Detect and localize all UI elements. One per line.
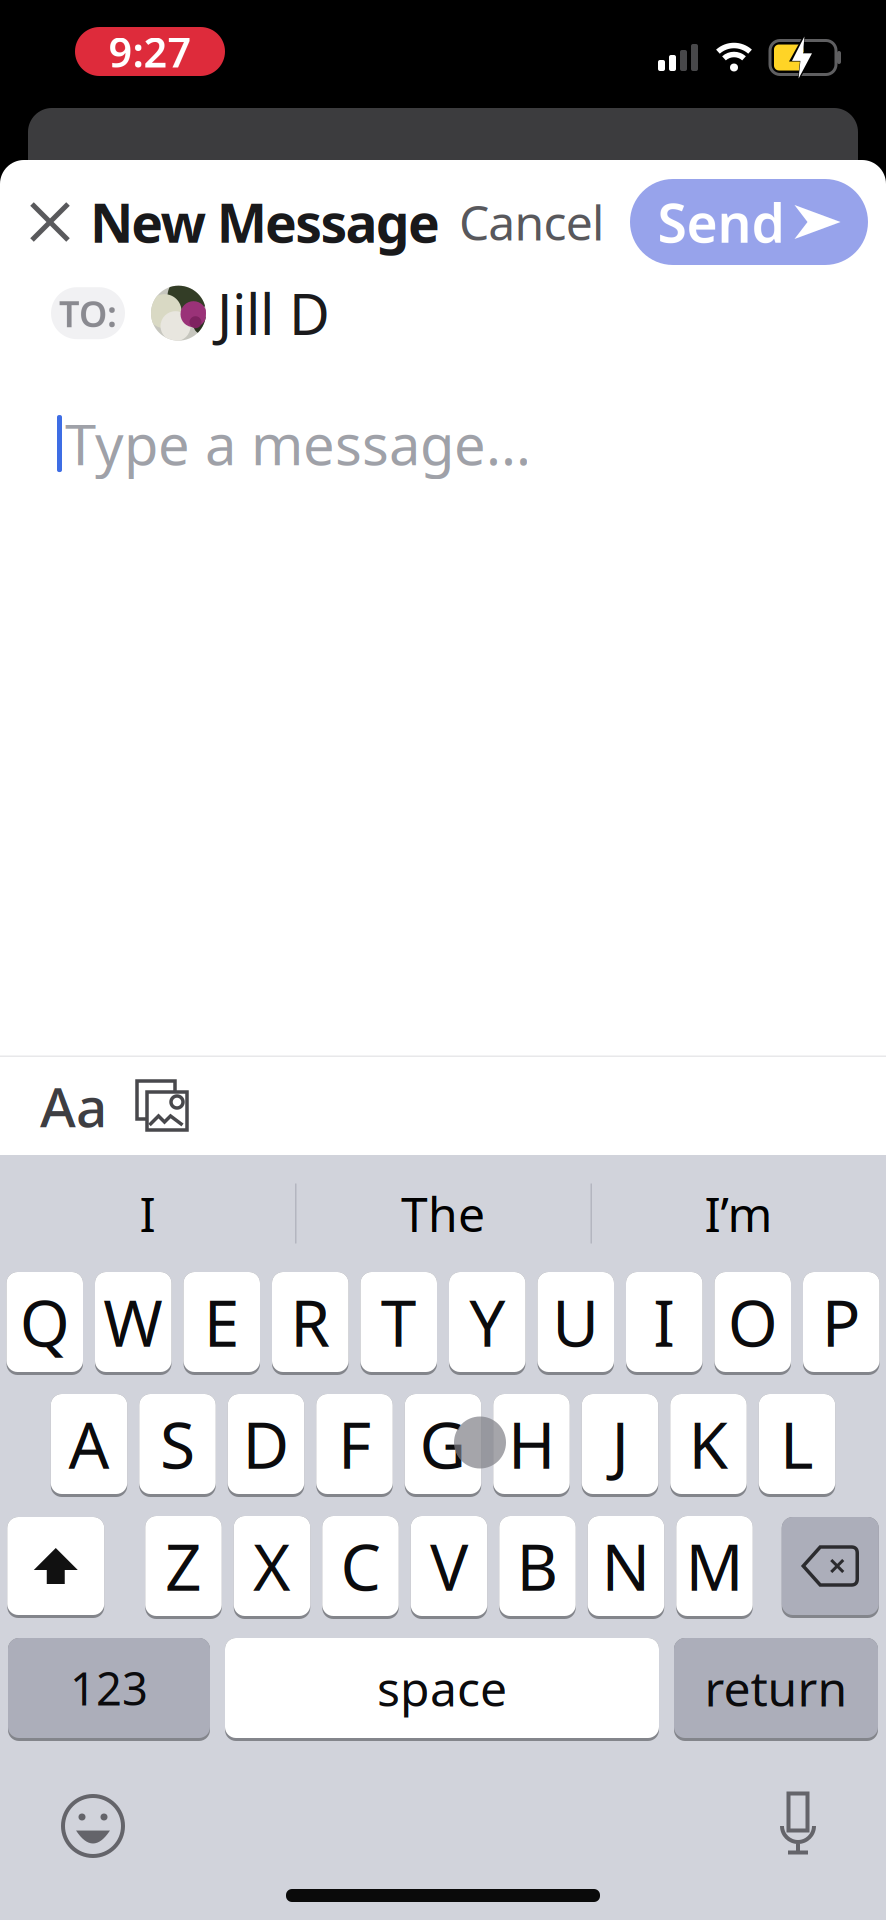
button[interactable]: Dictation [776, 1795, 886, 1857]
staticText: Q [20, 1279, 70, 1364]
staticText: X [253, 1523, 291, 1608]
staticText: V [430, 1523, 468, 1608]
staticText: TO: [59, 289, 117, 337]
button[interactable]: Shift [7, 1517, 104, 1618]
staticText: W [103, 1279, 163, 1364]
button[interactable]: Delete [782, 1517, 879, 1618]
button[interactable]: The [295, 1155, 591, 1272]
button[interactable]: K [670, 1394, 747, 1497]
button[interactable]: D [228, 1394, 304, 1497]
button[interactable]: Cancel [459, 190, 604, 254]
staticText: Type a message... [65, 406, 531, 481]
button[interactable]: I’m [591, 1155, 886, 1272]
staticText: 123 [70, 1658, 148, 1718]
staticText: U [552, 1279, 599, 1364]
button[interactable]: Q [6, 1272, 83, 1375]
button[interactable]: R [272, 1272, 348, 1375]
staticText: E [204, 1279, 240, 1364]
button[interactable]: W [95, 1272, 171, 1375]
staticText: F [338, 1401, 371, 1486]
staticText: New Message [90, 187, 440, 257]
button[interactable]: U [537, 1272, 614, 1375]
button[interactable]: I [626, 1272, 702, 1375]
staticText: L [780, 1401, 814, 1486]
staticText: 9:27 [108, 24, 191, 79]
staticText: A [68, 1401, 109, 1486]
button[interactable]: S [139, 1394, 216, 1497]
staticText: R [290, 1279, 330, 1364]
staticText: I’m [704, 1182, 772, 1245]
button[interactable]: X [234, 1516, 310, 1619]
staticText: space [377, 1656, 507, 1720]
staticText: Aa [40, 1070, 107, 1142]
staticText: N [601, 1523, 650, 1608]
button[interactable]: H [493, 1394, 570, 1497]
button[interactable]: J [582, 1394, 658, 1497]
staticText: I [653, 1279, 675, 1364]
button[interactable]: 123 [8, 1638, 210, 1741]
staticText: H [508, 1401, 555, 1486]
button[interactable]: P [803, 1272, 879, 1375]
staticText: M [685, 1523, 743, 1608]
button[interactable]: Send [630, 179, 868, 265]
staticText: Jill D [217, 276, 330, 350]
button[interactable]: M [676, 1516, 753, 1619]
button[interactable]: A [51, 1394, 127, 1497]
staticText: Z [165, 1523, 202, 1608]
button[interactable]: O [714, 1272, 791, 1375]
button[interactable]: Emoji [0, 1797, 122, 1855]
button[interactable]: V [411, 1516, 487, 1619]
staticText: D [242, 1401, 289, 1486]
staticText: P [822, 1279, 861, 1364]
button[interactable]: Photos [107, 1078, 191, 1134]
button[interactable]: L [759, 1394, 835, 1497]
staticText: S [160, 1401, 195, 1486]
button[interactable]: space [225, 1638, 659, 1741]
button[interactable]: C [322, 1516, 399, 1619]
staticText: C [340, 1523, 380, 1608]
staticText: return [704, 1656, 847, 1720]
button[interactable]: T [360, 1272, 437, 1375]
button[interactable]: N [588, 1516, 664, 1619]
staticText: B [516, 1523, 558, 1608]
button[interactable]: Text formatting [0, 1070, 107, 1142]
button[interactable]: E [183, 1272, 260, 1375]
staticText: Send [657, 187, 784, 257]
button[interactable]: I [0, 1155, 295, 1272]
staticText: T [381, 1279, 417, 1364]
button[interactable]: return [674, 1638, 878, 1741]
staticText: Y [469, 1279, 505, 1364]
staticText: The [401, 1182, 485, 1245]
button[interactable]: B [499, 1516, 576, 1619]
staticText: G [419, 1401, 466, 1486]
staticText: K [688, 1401, 728, 1486]
button[interactable]: Z [145, 1516, 222, 1619]
staticText: Cancel [459, 190, 604, 254]
button[interactable]: Y [449, 1272, 525, 1375]
staticText: I [139, 1182, 155, 1245]
staticText: O [728, 1279, 778, 1364]
staticText: J [611, 1401, 628, 1486]
button[interactable]: F [316, 1394, 393, 1497]
button[interactable]: Close [0, 200, 72, 244]
button[interactable]: G [405, 1394, 481, 1497]
